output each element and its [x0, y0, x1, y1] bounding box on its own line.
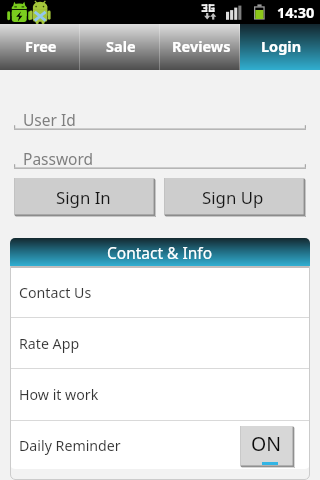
staticText: Rate App [19, 334, 80, 353]
button[interactable]: Sign In [14, 178, 156, 217]
staticText: 14:30 [277, 2, 315, 22]
staticText: Sign In [56, 186, 111, 209]
staticText: Sign Up [202, 186, 264, 209]
button[interactable]: Rate App [10, 318, 310, 368]
button[interactable]: Sale [80, 24, 160, 70]
button[interactable]: Login [240, 24, 320, 70]
staticText: Sale [106, 36, 136, 56]
button[interactable]: How it work [10, 369, 310, 420]
button[interactable]: Contact Us [10, 268, 310, 317]
staticText: Password [23, 148, 94, 168]
button[interactable]: Free [0, 24, 80, 70]
staticText: Contact & Info [107, 242, 213, 263]
staticText: ON [251, 430, 282, 457]
button[interactable]: Reviews [160, 24, 240, 70]
staticText: User Id [23, 109, 76, 129]
staticText: Daily Reminder [19, 436, 121, 455]
button[interactable]: Sign Up [164, 178, 306, 217]
staticText: Login [261, 36, 302, 56]
staticText: Free [25, 36, 57, 56]
button[interactable]: ON [240, 426, 295, 468]
staticText: How it work [19, 385, 99, 404]
staticText: Contact Us [19, 283, 92, 302]
staticText: Reviews [172, 36, 231, 56]
